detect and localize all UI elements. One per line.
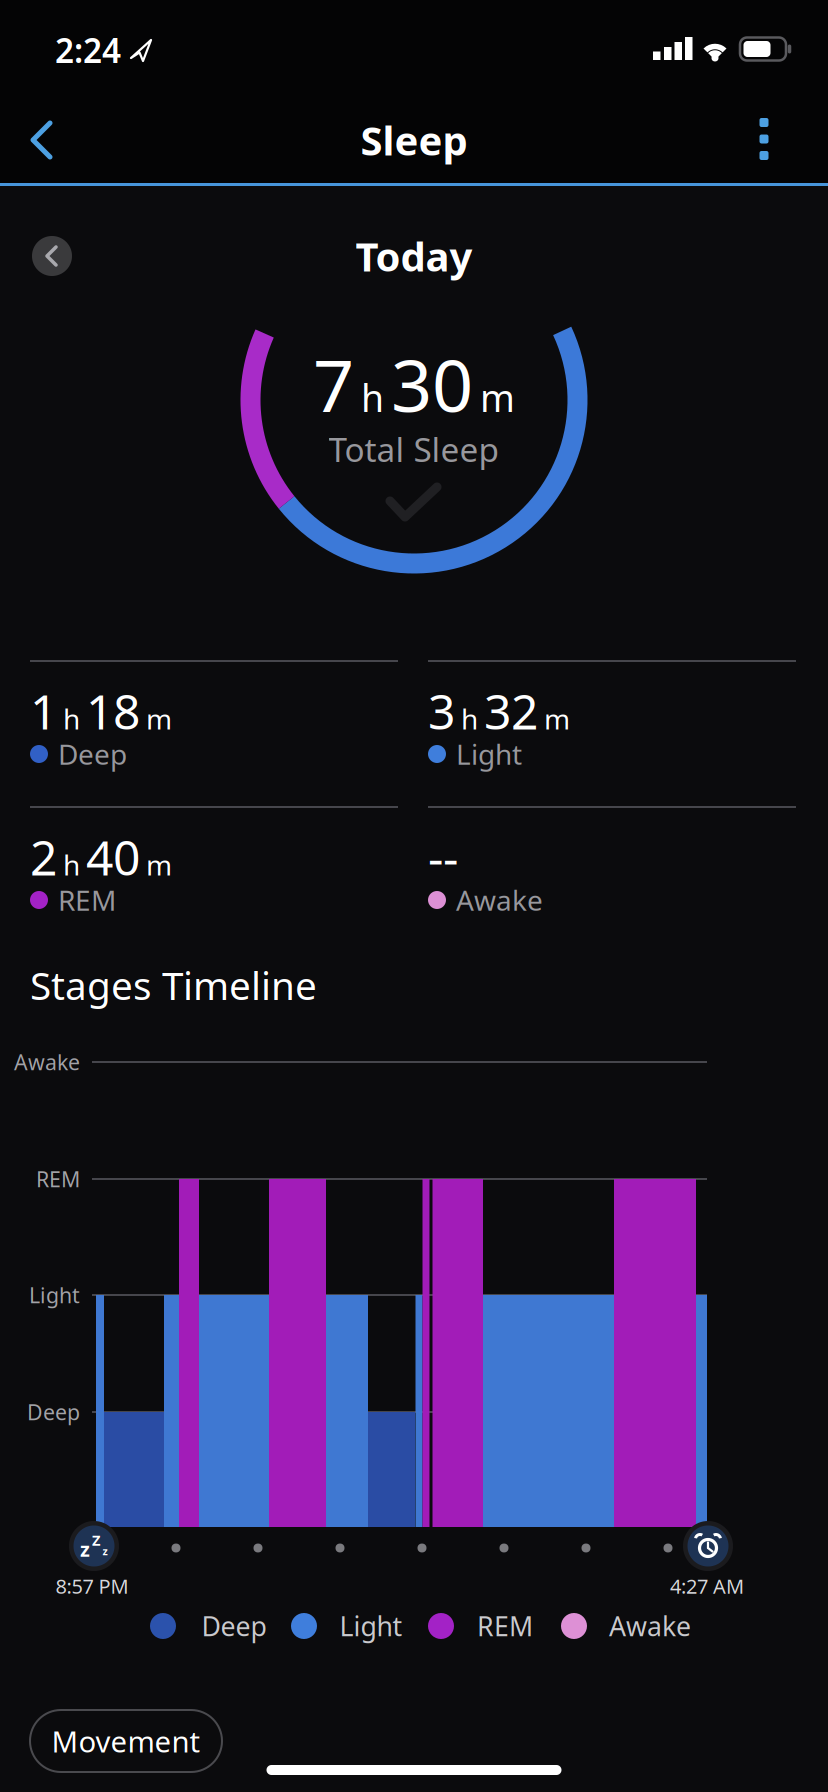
staticText: 1 — [30, 679, 57, 743]
staticText: 7 — [313, 336, 354, 432]
staticText: REM — [477, 1608, 533, 1644]
staticText: Today — [355, 229, 472, 282]
staticText: Sleep — [360, 113, 467, 166]
staticText: 4:27 AM — [670, 1573, 744, 1599]
button[interactable] — [734, 99, 794, 179]
staticText: m — [146, 700, 172, 737]
staticText: 8:57 PM — [55, 1573, 128, 1599]
staticText: m — [480, 373, 515, 422]
staticText: REM — [36, 1165, 80, 1193]
staticText: 32 — [484, 679, 538, 743]
button[interactable]: Movement — [30, 1710, 222, 1772]
staticText: Light — [456, 735, 522, 773]
staticText: Deep — [201, 1608, 266, 1644]
staticText: h — [63, 700, 80, 737]
staticText: 3 — [428, 679, 455, 743]
staticText: Awake — [14, 1048, 80, 1076]
staticText: Deep — [58, 735, 127, 773]
button[interactable] — [7, 100, 77, 180]
staticText: Stages Timeline — [30, 959, 317, 1011]
staticText: Awake — [609, 1608, 691, 1644]
staticText: h — [461, 700, 478, 737]
staticText: Deep — [27, 1398, 80, 1426]
staticText: -- — [428, 825, 458, 889]
staticText: 2 — [30, 825, 57, 889]
staticText: m — [146, 846, 172, 883]
staticText: 18 — [86, 679, 140, 743]
staticText: h — [361, 373, 384, 422]
staticText: REM — [58, 881, 116, 919]
staticText: 40 — [86, 825, 140, 889]
staticText: z — [102, 1544, 107, 1558]
staticText: Z — [92, 1530, 100, 1550]
staticText: Light — [339, 1608, 402, 1644]
staticText: h — [63, 846, 80, 883]
staticText: 30 — [391, 336, 473, 432]
staticText: Total Sleep — [328, 427, 499, 471]
staticText: 2:24 — [55, 28, 121, 72]
staticText: Awake — [456, 881, 543, 919]
staticText: m — [544, 700, 570, 737]
staticText: z — [80, 1536, 90, 1562]
staticText: Movement — [51, 1721, 200, 1760]
button[interactable] — [32, 236, 72, 276]
staticText: Light — [29, 1281, 80, 1309]
